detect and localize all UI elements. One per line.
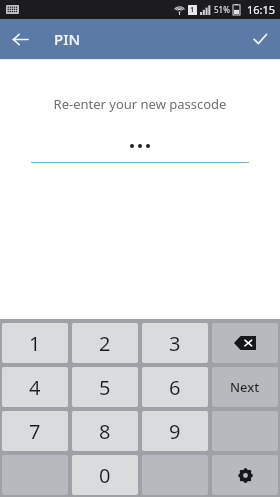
button[interactable]: 0 bbox=[72, 455, 138, 495]
button[interactable]: 7 bbox=[2, 411, 68, 451]
button[interactable]: 2 bbox=[72, 323, 138, 363]
staticText: PIN bbox=[54, 29, 81, 49]
button[interactable]: Confirm bbox=[240, 19, 280, 59]
staticText: 6 bbox=[169, 374, 181, 401]
staticText: 9 bbox=[169, 418, 181, 445]
staticText: 51% bbox=[214, 4, 230, 15]
staticText: 8 bbox=[99, 418, 111, 445]
staticText: Next bbox=[230, 378, 260, 396]
staticText: 2 bbox=[99, 330, 111, 357]
button[interactable]: Back bbox=[0, 19, 40, 59]
staticText: 7 bbox=[29, 418, 41, 445]
button[interactable]: 5 bbox=[72, 367, 138, 407]
staticText: 0 bbox=[99, 462, 111, 489]
button[interactable]: 8 bbox=[72, 411, 138, 451]
staticText: 4 bbox=[29, 374, 41, 401]
button[interactable]: 4 bbox=[2, 367, 68, 407]
button[interactable]: Backspace bbox=[212, 323, 278, 363]
button[interactable]: 9 bbox=[142, 411, 208, 451]
staticText: Re-enter your new passcode bbox=[0, 95, 280, 113]
button[interactable]: Keyboard settings bbox=[212, 455, 278, 495]
staticText: 3 bbox=[169, 330, 181, 357]
staticText: 5 bbox=[99, 374, 111, 401]
button[interactable]: 6 bbox=[142, 367, 208, 407]
button[interactable]: 1 bbox=[2, 323, 68, 363]
staticText: 1 bbox=[29, 330, 41, 357]
staticText: 1 bbox=[190, 5, 195, 15]
staticText: 16:15 bbox=[247, 2, 276, 17]
button[interactable]: 3 bbox=[142, 323, 208, 363]
button[interactable]: Next bbox=[212, 367, 278, 407]
